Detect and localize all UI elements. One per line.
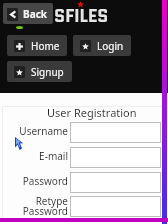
button[interactable]: Signup: [7, 61, 72, 82]
staticText: Signup: [31, 65, 64, 79]
staticText: Password: [0, 174, 68, 188]
staticText: User Registration: [47, 105, 137, 120]
button[interactable]: [70, 196, 161, 217]
staticText: E-mail: [0, 149, 68, 163]
staticText: Username: [0, 124, 68, 138]
button[interactable]: [70, 147, 161, 168]
staticText: Back: [23, 7, 47, 21]
button[interactable]: Back: [3, 3, 53, 24]
staticText: Home: [31, 39, 60, 53]
staticText: Login: [97, 39, 124, 53]
button[interactable]: Home: [7, 35, 67, 56]
staticText: Retype Password: [0, 194, 68, 215]
staticText: SFILES: [54, 4, 109, 28]
button[interactable]: Login: [73, 35, 131, 56]
button[interactable]: [70, 122, 161, 143]
button[interactable]: [70, 172, 161, 193]
